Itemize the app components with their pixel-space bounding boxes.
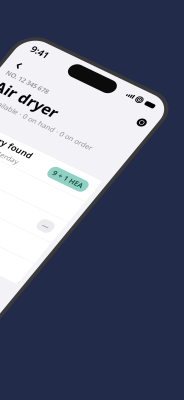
staticText: ‹: [62, 88, 75, 141]
staticText: 0 available · 0 on hand · 0 on order: [56, 215, 184, 238]
staticText: 9:41: [66, 51, 111, 81]
button[interactable]: Back: [52, 98, 86, 132]
staticText: NO. 12 345 678: [56, 137, 169, 158]
staticText: Air dryer: [56, 162, 184, 211]
